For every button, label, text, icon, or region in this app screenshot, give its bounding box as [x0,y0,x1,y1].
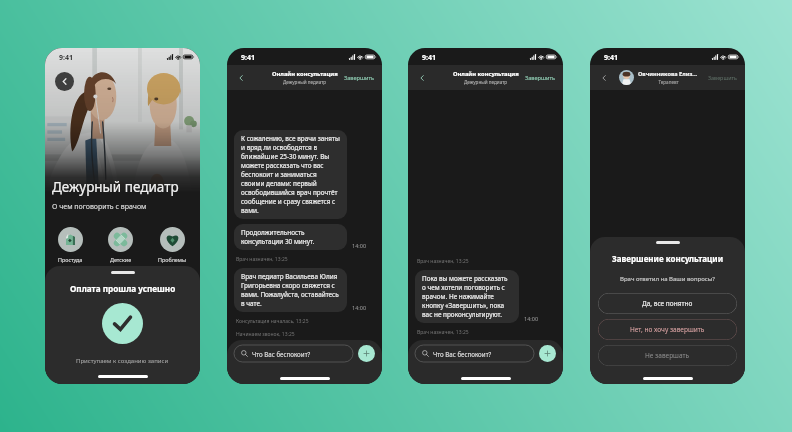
staticText: Дежурный педиатр [464,79,508,85]
staticText: Врач назначен, 13:25 [417,258,469,265]
staticText: 9:41 [604,53,618,63]
staticText: 14:00 [352,242,367,249]
button[interactable]: Add attachment [358,345,375,362]
staticText: Не завершать [645,351,690,360]
staticText: Что Вас беспокоит? [433,350,492,358]
staticText: Проблемы [158,256,187,263]
staticText: 9:41 [422,53,436,63]
staticText: Детские [110,256,132,263]
button[interactable]: Что Вас беспокоит? [234,345,353,362]
staticText: Врач назначен, 13:25 [236,256,288,263]
button[interactable]: Что Вас беспокоит? [415,345,534,362]
staticText: Приступаем к созданию записи [76,357,169,365]
staticText: Завершить [344,74,375,82]
staticText: Пока вы можете рассказать о чем хотели п… [422,274,512,319]
staticText: Да, все понятно [642,299,693,308]
staticText: Продолжительность консультации 30 минут. [241,228,340,246]
staticText: Консультация началась, 13:25 [236,318,309,325]
staticText: Что Вас беспокоит? [252,350,311,358]
button[interactable]: Back [596,70,612,86]
button[interactable]: Простуда [58,227,83,263]
staticText: Завершить [525,74,556,82]
staticText: Нет, но хочу завершить [630,325,705,334]
staticText: К сожалению, все врачи заняты и вряд ли … [241,134,340,215]
staticText: Дежурный педиатр [283,79,327,85]
staticText: Онлайн консультация [272,70,338,78]
button[interactable]: Завершить [344,74,375,82]
staticText: Дежурный педиатр [52,178,179,196]
staticText: 14:00 [352,304,367,311]
staticText: Врач ответил на Ваши вопросы? [620,275,715,283]
staticText: 9:41 [241,53,255,63]
staticText: Начинаем звонок, 13:25 [236,331,295,338]
staticText: Простуда [58,256,83,263]
staticText: Онлайн консультация [453,70,519,78]
button[interactable]: Завершить [708,74,738,81]
staticText: Терапевт [658,79,679,85]
button[interactable]: Нет, но хочу завершить [598,319,737,340]
button[interactable]: Add attachment [539,345,556,362]
staticText: Завершить [708,74,738,81]
button[interactable]: Не завершать [598,345,737,366]
button[interactable]: Back [233,70,249,86]
button[interactable]: Детские [108,227,133,263]
staticText: 9:41 [59,53,73,63]
button[interactable]: Back [414,70,430,86]
button[interactable]: Да, все понятно [598,293,737,314]
button[interactable]: Завершить [525,74,556,82]
staticText: Врач назначен, 13:25 [417,329,469,336]
staticText: Овчинникова Елиз... [638,70,698,78]
staticText: Завершение консультации [612,253,724,264]
staticText: Врач педиатр Васильева Юлия Григорьевна … [241,272,340,308]
staticText: 14:00 [524,315,539,322]
staticText: О чем поговорить с врачом [52,202,147,212]
button[interactable]: Back [55,72,74,91]
staticText: Оплата прошла успешно [70,283,176,294]
button[interactable]: Проблемы [158,227,187,263]
